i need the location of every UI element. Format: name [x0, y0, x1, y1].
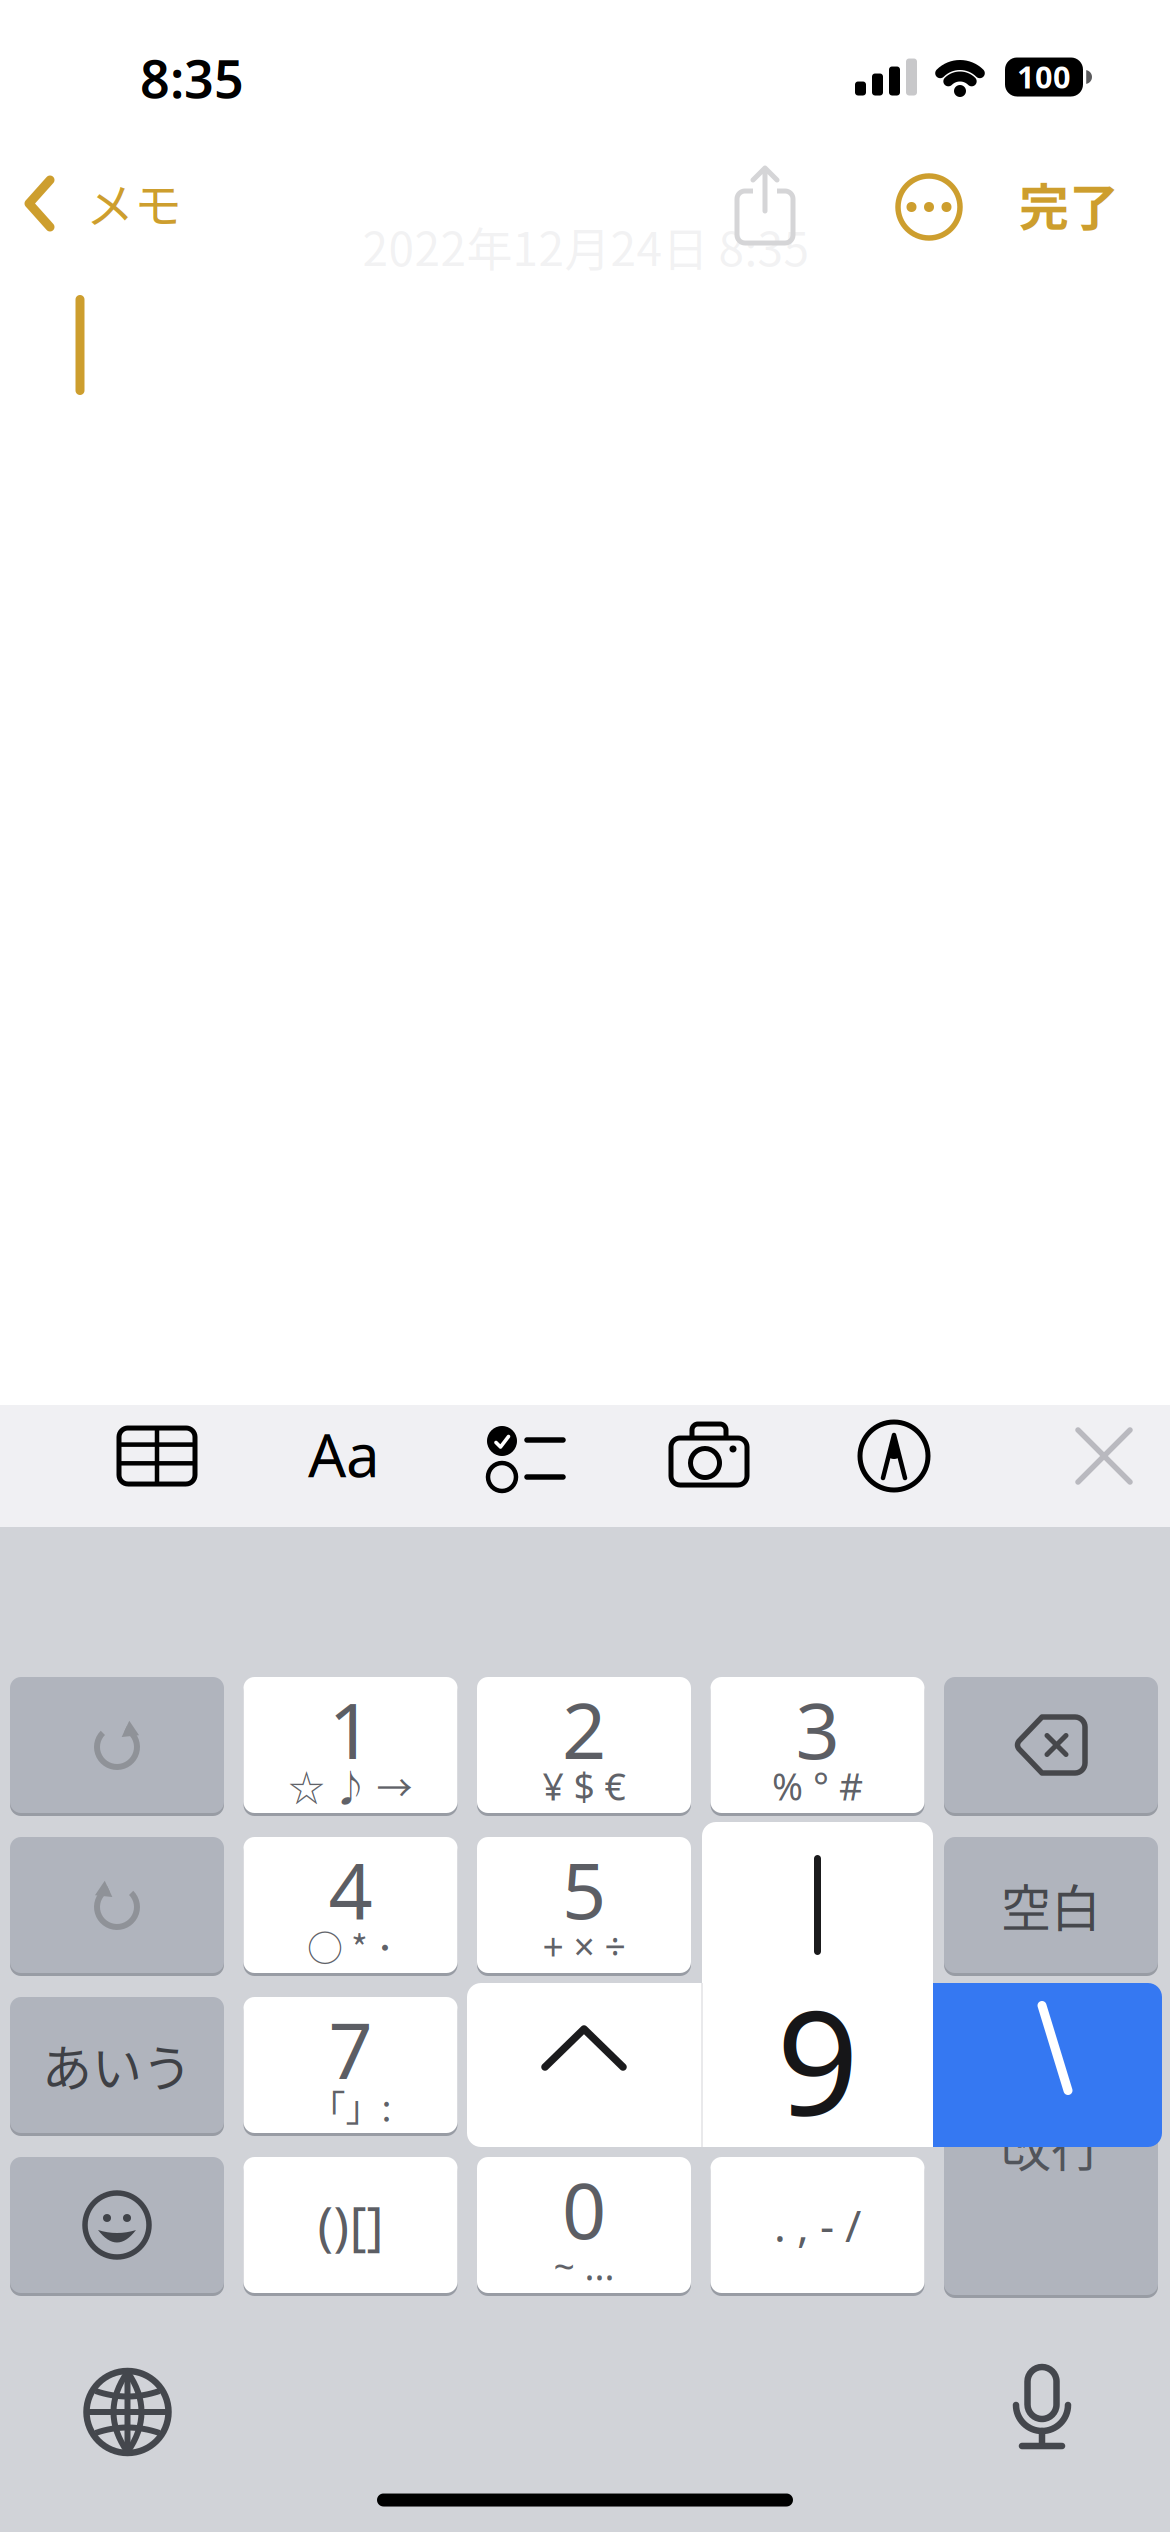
button[interactable]: Emoji — [10, 2157, 224, 2297]
staticText: ○ * ･ — [307, 1920, 394, 1972]
button[interactable]: Share — [733, 165, 797, 243]
button[interactable]: 2 — [477, 1677, 691, 1817]
button[interactable]: 完了 — [1019, 168, 1119, 240]
staticText: 2 — [562, 1678, 606, 1780]
button[interactable]: Dictation — [1014, 2366, 1070, 2450]
staticText: 8:35 — [140, 43, 244, 113]
staticText: + × ÷ — [542, 1921, 625, 1971]
button[interactable]: 8 — [477, 1997, 691, 2137]
button[interactable]: .,-/ — [710, 2157, 924, 2297]
staticText: 3 — [795, 1678, 839, 1780]
staticText: 完了 — [1019, 168, 1119, 240]
button[interactable]: Markup — [859, 1421, 929, 1491]
button[interactable]: ()[] — [243, 2157, 457, 2297]
button[interactable]: 空白 — [944, 1837, 1158, 1977]
button[interactable]: Undo — [10, 1837, 224, 1977]
button[interactable]: 改行 — [944, 1997, 1158, 2299]
staticText: ()[] — [317, 2190, 383, 2260]
staticText: 6 — [795, 1838, 839, 1940]
staticText: 8 — [562, 1998, 606, 2100]
button[interactable]: 9 — [710, 1997, 924, 2137]
button[interactable]: Delete — [944, 1677, 1158, 1817]
button[interactable]: More — [897, 175, 961, 239]
button[interactable]: Redo — [10, 1677, 224, 1817]
button[interactable]: Insert table — [117, 1426, 197, 1486]
button[interactable]: Next keyboard — [86, 2371, 168, 2453]
button[interactable]: メモ — [12, 172, 207, 236]
button[interactable]: あいう — [10, 1997, 224, 2137]
staticText: 0 — [562, 2158, 606, 2260]
staticText: 改行 — [1001, 2109, 1101, 2181]
staticText: 2022年12月24日 8:35 — [362, 213, 809, 279]
button[interactable]: 0 — [477, 2157, 691, 2297]
staticText: ☆ ♪ → — [288, 1760, 412, 1812]
staticText: あいう — [42, 2029, 192, 2101]
button[interactable]: 3 — [710, 1677, 924, 1817]
button[interactable]: 5 — [477, 1837, 691, 1977]
staticText: ¥ $ € — [542, 1761, 625, 1811]
button[interactable]: Formatting — [308, 1414, 380, 1494]
staticText: . , - / — [774, 2196, 861, 2254]
staticText: % ° # — [772, 1761, 863, 1811]
button[interactable]: Dismiss keyboard — [1076, 1428, 1132, 1484]
staticText: 1 — [328, 1678, 372, 1780]
button[interactable]: 7 — [243, 1997, 457, 2137]
staticText: メモ — [86, 167, 182, 237]
button[interactable]: Checklist — [487, 1425, 567, 1487]
staticText: 100 — [1017, 56, 1071, 97]
button[interactable]: Camera — [671, 1426, 751, 1488]
staticText: Aa — [308, 1414, 380, 1494]
staticText: 9 — [795, 1998, 839, 2100]
staticText: 5 — [562, 1838, 606, 1940]
staticText: 9 — [776, 1964, 858, 2156]
staticText: 「」: — [309, 2080, 391, 2132]
staticText: 4 — [328, 1838, 372, 1940]
staticText: 空白 — [1001, 1869, 1101, 1941]
staticText: ~ ... — [553, 2241, 614, 2291]
button[interactable]: 1 — [243, 1677, 457, 1817]
staticText: 7 — [328, 1998, 372, 2100]
button[interactable]: 4 — [243, 1837, 457, 1977]
button[interactable]: 6 — [710, 1837, 924, 1977]
